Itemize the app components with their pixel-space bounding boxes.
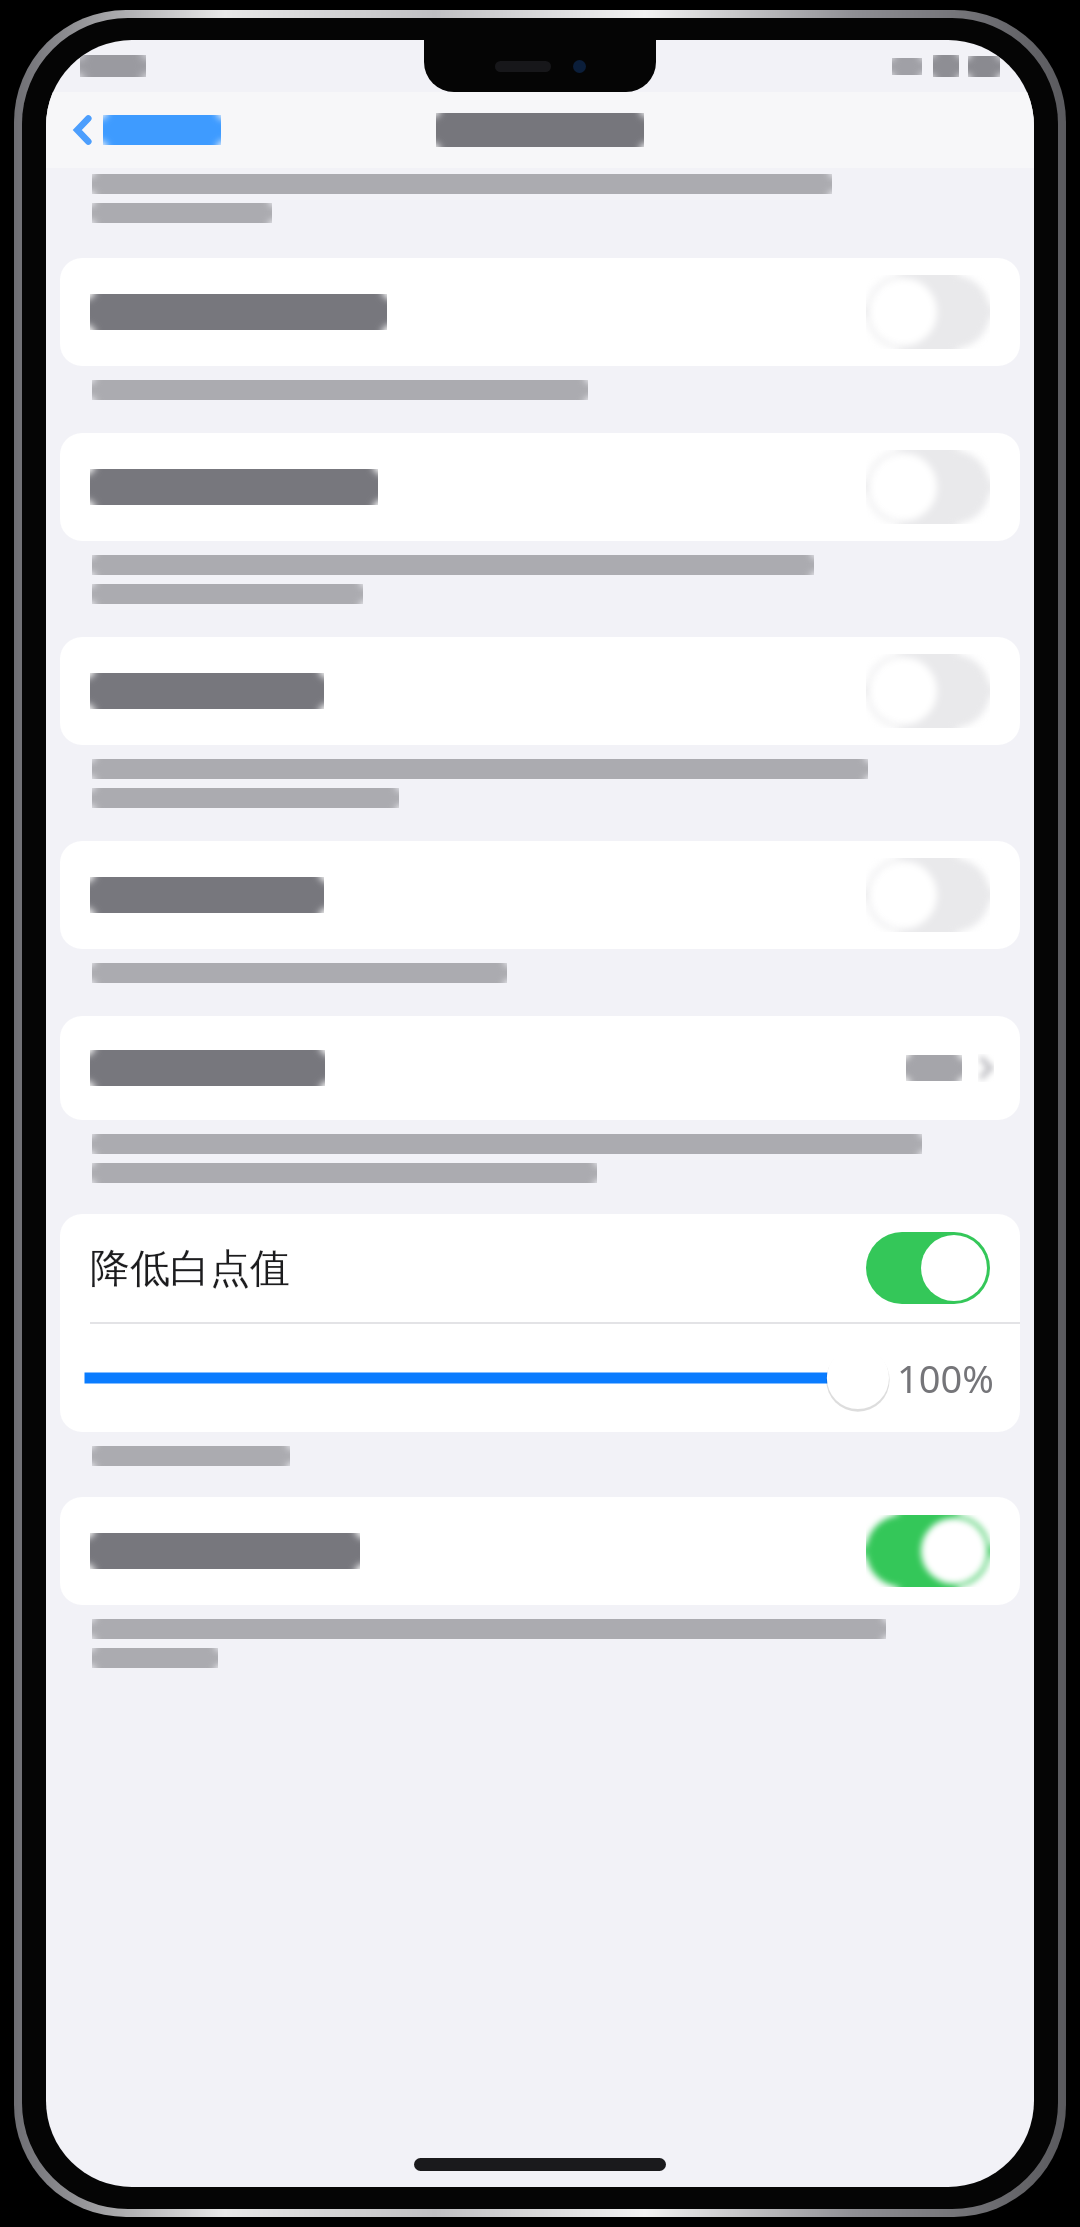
button[interactable]	[60, 1497, 1020, 1605]
button[interactable]: 降低白点值	[60, 1214, 1020, 1322]
button[interactable]	[60, 841, 1020, 949]
button[interactable]	[60, 637, 1020, 745]
button[interactable]	[60, 258, 1020, 366]
button[interactable]	[90, 1341, 875, 1415]
button[interactable]	[60, 433, 1020, 541]
staticText: 100%	[897, 1352, 994, 1404]
staticText: 降低白点值	[90, 1243, 290, 1293]
button[interactable]	[60, 1016, 1020, 1120]
button[interactable]: Back	[64, 107, 229, 153]
